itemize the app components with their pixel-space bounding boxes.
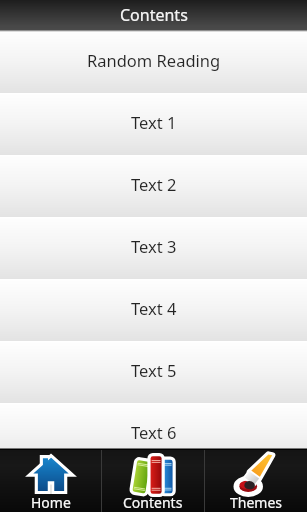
button[interactable]: Text 6 <box>0 404 307 465</box>
button[interactable]: Text 7 <box>0 466 307 512</box>
other: Contents <box>131 452 175 496</box>
button[interactable]: Contents <box>102 450 204 512</box>
button[interactable]: Text 4 <box>0 280 307 341</box>
button[interactable]: Themes <box>205 450 307 512</box>
staticText: Text 3 <box>131 235 177 257</box>
staticText: Contents <box>120 4 188 26</box>
staticText: Home <box>31 493 71 512</box>
button[interactable]: Text 5 <box>0 342 307 403</box>
button[interactable]: Text 2 <box>0 156 307 217</box>
staticText: Text 7 <box>131 475 177 497</box>
button[interactable]: Text 1 <box>0 94 307 155</box>
staticText: Text 1 <box>131 111 177 133</box>
staticText: Themes <box>230 493 283 512</box>
staticText: Text 6 <box>131 421 177 443</box>
staticText: Random Reading <box>87 49 221 71</box>
other: Themes <box>235 453 277 495</box>
staticText: Contents <box>123 493 183 512</box>
button[interactable]: Text 3 <box>0 218 307 279</box>
staticText: Text 4 <box>131 297 177 319</box>
staticText: Text 2 <box>131 173 177 195</box>
staticText: Text 5 <box>131 359 177 381</box>
button[interactable]: Random Reading <box>0 32 307 93</box>
other: Home <box>30 453 72 495</box>
button[interactable]: Home <box>0 450 101 512</box>
